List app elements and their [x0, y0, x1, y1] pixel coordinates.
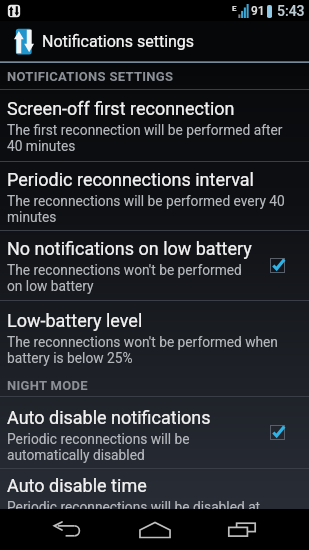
staticText: E — [232, 4, 237, 13]
staticText: Periodic reconnections will be automatic… — [7, 431, 190, 464]
staticText: Periodic reconnections interval — [7, 169, 254, 190]
button[interactable]: Home — [127, 509, 183, 550]
button[interactable]: Auto disable notifications — [0, 397, 309, 468]
staticText: Auto disable notifications — [7, 407, 211, 428]
staticText: No notifications on low battery — [7, 238, 252, 259]
button[interactable]: Low-battery level — [0, 301, 309, 375]
staticText: The reconnections won't be performed on … — [7, 262, 242, 295]
staticText: Low-battery level — [7, 310, 143, 331]
button[interactable]: Auto disable time — [0, 469, 309, 509]
button[interactable]: Back — [40, 509, 96, 550]
staticText: 91 — [251, 4, 265, 18]
button[interactable]: Recent apps — [214, 509, 270, 550]
staticText: The reconnections will be performed ever… — [7, 193, 285, 226]
button[interactable]: Toggle — [246, 231, 309, 300]
button[interactable]: Periodic reconnections interval — [0, 162, 309, 230]
staticText: Periodic reconnections will be disabled … — [7, 499, 261, 509]
staticText: NIGHT MODE — [7, 378, 88, 393]
staticText: 5:43 — [277, 3, 305, 19]
button[interactable]: Toggle — [246, 397, 309, 468]
staticText: Notifications settings — [42, 32, 195, 51]
staticText: NOTIFICATIONS SETTINGS — [7, 69, 174, 84]
button[interactable]: Screen-off first reconnection — [0, 90, 309, 161]
button[interactable]: No notifications on low battery — [0, 231, 309, 300]
staticText: The first reconnection will be performed… — [7, 122, 283, 155]
staticText: Screen-off first reconnection — [7, 98, 235, 119]
staticText: The reconnections won't be performed whe… — [7, 334, 278, 367]
staticText: Auto disable time — [7, 475, 147, 496]
